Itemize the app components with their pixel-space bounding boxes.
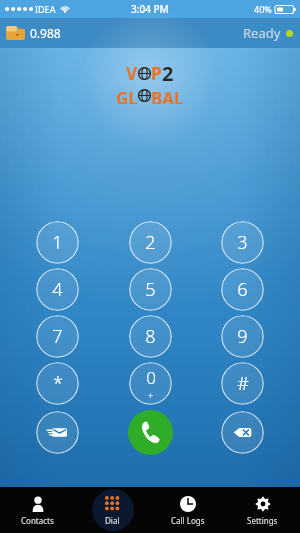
staticText: BAL — [151, 87, 184, 104]
button[interactable]: 6 — [221, 268, 264, 311]
staticText: 6 — [237, 277, 248, 302]
button[interactable]: Call — [128, 410, 173, 455]
staticText: P — [151, 62, 162, 85]
button[interactable]: 7 — [36, 315, 79, 358]
staticText: Ready — [243, 24, 281, 42]
staticText: 8 — [145, 324, 156, 349]
button[interactable]: 3 — [221, 221, 264, 264]
button[interactable]: Contacts — [0, 487, 75, 533]
staticText: 40% — [254, 3, 272, 15]
button[interactable]: 8 — [129, 315, 172, 358]
staticText: 0.988 — [30, 25, 61, 41]
button[interactable]: 9 — [221, 315, 264, 358]
staticText: 3 — [237, 230, 248, 255]
staticText: 2 — [162, 60, 174, 87]
button[interactable]: # — [221, 362, 264, 405]
button[interactable]: 1 — [36, 221, 79, 264]
staticText: 2 — [145, 230, 156, 255]
staticText: Settings — [247, 515, 278, 526]
button[interactable]: Settings — [225, 487, 300, 533]
staticText: Call Logs — [171, 515, 205, 526]
button[interactable]: * — [36, 362, 79, 405]
staticText: 9 — [237, 324, 248, 349]
staticText: GL — [116, 87, 138, 104]
staticText: 7 — [52, 324, 63, 349]
staticText: 1 — [52, 230, 63, 255]
button[interactable]: Dial — [75, 487, 150, 533]
button[interactable]: Voicemail — [36, 411, 79, 454]
staticText: 3:04 PM — [131, 2, 169, 16]
button[interactable]: 2 — [129, 221, 172, 264]
staticText: Dial — [105, 515, 120, 526]
button[interactable]: 5 — [129, 268, 172, 311]
staticText: 4 — [52, 277, 63, 302]
button[interactable]: 0 — [129, 362, 172, 405]
staticText: 5 — [145, 277, 156, 302]
staticText: Contacts — [21, 515, 54, 526]
button[interactable]: Call Logs — [150, 487, 225, 533]
staticText: IDEA — [35, 3, 56, 15]
button[interactable]: Backspace — [221, 411, 264, 454]
staticText: V — [126, 62, 138, 85]
staticText: # — [237, 371, 249, 396]
staticText: + — [148, 389, 154, 401]
button[interactable]: 4 — [36, 268, 79, 311]
staticText: * — [53, 371, 63, 396]
staticText: 0 — [146, 366, 156, 389]
